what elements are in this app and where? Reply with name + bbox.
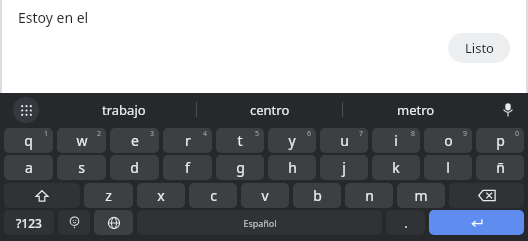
button[interactable]: i <box>372 128 420 153</box>
button[interactable]: metro <box>343 93 488 126</box>
button[interactable]: h <box>268 155 316 180</box>
button[interactable]: ?123 <box>4 210 54 235</box>
staticText: 8 <box>411 129 416 139</box>
staticText: m <box>414 186 428 205</box>
button[interactable]: o <box>424 128 472 153</box>
button[interactable]: trabajo <box>52 93 196 126</box>
button[interactable]: d <box>110 155 159 180</box>
staticText: q <box>24 131 33 150</box>
staticText: v <box>261 186 269 205</box>
button[interactable]: y <box>268 128 316 153</box>
button[interactable]: centro <box>197 93 342 126</box>
staticText: . <box>404 214 408 232</box>
staticText: k <box>392 158 400 177</box>
button[interactable]: u <box>320 128 368 153</box>
staticText: 0 <box>515 129 520 139</box>
staticText: 7 <box>359 129 364 139</box>
button[interactable]: . <box>386 210 425 235</box>
button[interactable]: e <box>110 128 159 153</box>
staticText: 9 <box>463 129 468 139</box>
button[interactable]: Mayúsculas <box>4 183 80 208</box>
staticText: o <box>444 131 453 150</box>
staticText: g <box>236 158 245 177</box>
button[interactable]: s <box>57 155 106 180</box>
button[interactable]: n <box>345 183 393 208</box>
staticText: i <box>394 131 398 150</box>
staticText: metro <box>397 101 435 119</box>
button[interactable]: w <box>57 128 106 153</box>
button[interactable]: ñ <box>476 155 524 180</box>
staticText: w <box>76 131 88 150</box>
button[interactable]: b <box>293 183 341 208</box>
button[interactable]: f <box>163 155 212 180</box>
staticText: p <box>496 131 505 150</box>
staticText: a <box>25 158 33 177</box>
staticText: 1 <box>44 129 49 139</box>
button[interactable]: z <box>84 183 133 208</box>
staticText: centro <box>250 101 290 119</box>
button[interactable]: r <box>163 128 212 153</box>
button[interactable]: Retroceso <box>449 183 524 208</box>
staticText: c <box>210 186 217 205</box>
staticText: 2 <box>97 129 102 139</box>
button[interactable]: v <box>241 183 289 208</box>
button[interactable]: x <box>137 183 185 208</box>
button[interactable]: Más opciones <box>0 93 52 126</box>
staticText: u <box>340 131 349 150</box>
button[interactable]: Español <box>137 210 382 235</box>
button[interactable]: g <box>216 155 264 180</box>
staticText: 6 <box>307 129 312 139</box>
button[interactable]: Emoticonos <box>58 210 90 235</box>
staticText: s <box>78 158 85 177</box>
staticText: n <box>365 186 374 205</box>
staticText: Español <box>243 217 277 229</box>
button[interactable]: Listo <box>448 33 510 63</box>
staticText: x <box>157 186 165 205</box>
button[interactable]: t <box>216 128 264 153</box>
button[interactable]: q <box>4 128 53 153</box>
staticText: 3 <box>150 129 155 139</box>
staticText: Estoy en el <box>18 8 89 27</box>
staticText: r <box>185 131 191 150</box>
staticText: e <box>131 131 139 150</box>
staticText: 4 <box>203 129 208 139</box>
button[interactable]: j <box>320 155 368 180</box>
staticText: y <box>288 131 296 150</box>
staticText: j <box>342 158 346 177</box>
staticText: f <box>185 158 190 177</box>
staticText: trabajo <box>102 101 146 119</box>
button[interactable]: Entrada por voz <box>488 93 528 126</box>
staticText: ?123 <box>16 215 42 231</box>
staticText: 5 <box>255 129 260 139</box>
staticText: t <box>237 131 243 150</box>
staticText: Listo <box>465 39 494 57</box>
button[interactable]: a <box>4 155 53 180</box>
button[interactable]: Cambiar idioma <box>94 210 133 235</box>
button[interactable]: Intro <box>429 210 524 235</box>
button[interactable]: k <box>372 155 420 180</box>
button[interactable]: c <box>189 183 237 208</box>
staticText: d <box>130 158 139 177</box>
button[interactable]: p <box>476 128 524 153</box>
button[interactable]: l <box>424 155 472 180</box>
button[interactable]: m <box>397 183 445 208</box>
staticText: z <box>105 186 112 205</box>
staticText: h <box>288 158 297 177</box>
staticText: b <box>313 186 322 205</box>
staticText: l <box>446 158 450 177</box>
staticText: ñ <box>496 158 505 177</box>
